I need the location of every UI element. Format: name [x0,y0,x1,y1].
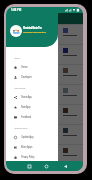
staticText: Update Check [14,126,28,129]
button[interactable]: Recents [24,161,34,171]
staticText: Share App [21,95,32,99]
staticText: Electrical Basic Pro [23,26,42,30]
button[interactable]: More Apps [6,142,58,152]
button[interactable]: Update App [6,132,58,142]
staticText: Rate App [21,105,31,109]
staticText: Home [21,65,28,69]
button[interactable]: Feedback [6,112,58,122]
staticText: Privacy Policy [21,155,35,159]
button[interactable]: Back [60,161,70,171]
button[interactable]: Privacy Policy [6,152,58,162]
staticText: Feedback [21,115,31,119]
button[interactable]: Rate App [6,102,58,112]
button[interactable]: Home [6,62,58,72]
staticText: offered by mcgr app store [23,30,46,33]
button[interactable]: Share App [6,92,58,102]
staticText: Update App [21,135,34,139]
button[interactable]: Developer [6,72,58,82]
staticText: Community [14,86,26,89]
staticText: Home [14,56,21,59]
button[interactable]: Home [41,161,51,171]
staticText: More Apps [21,145,33,149]
staticText: 1:08 PM [11,8,22,12]
staticText: Developer [21,75,32,79]
